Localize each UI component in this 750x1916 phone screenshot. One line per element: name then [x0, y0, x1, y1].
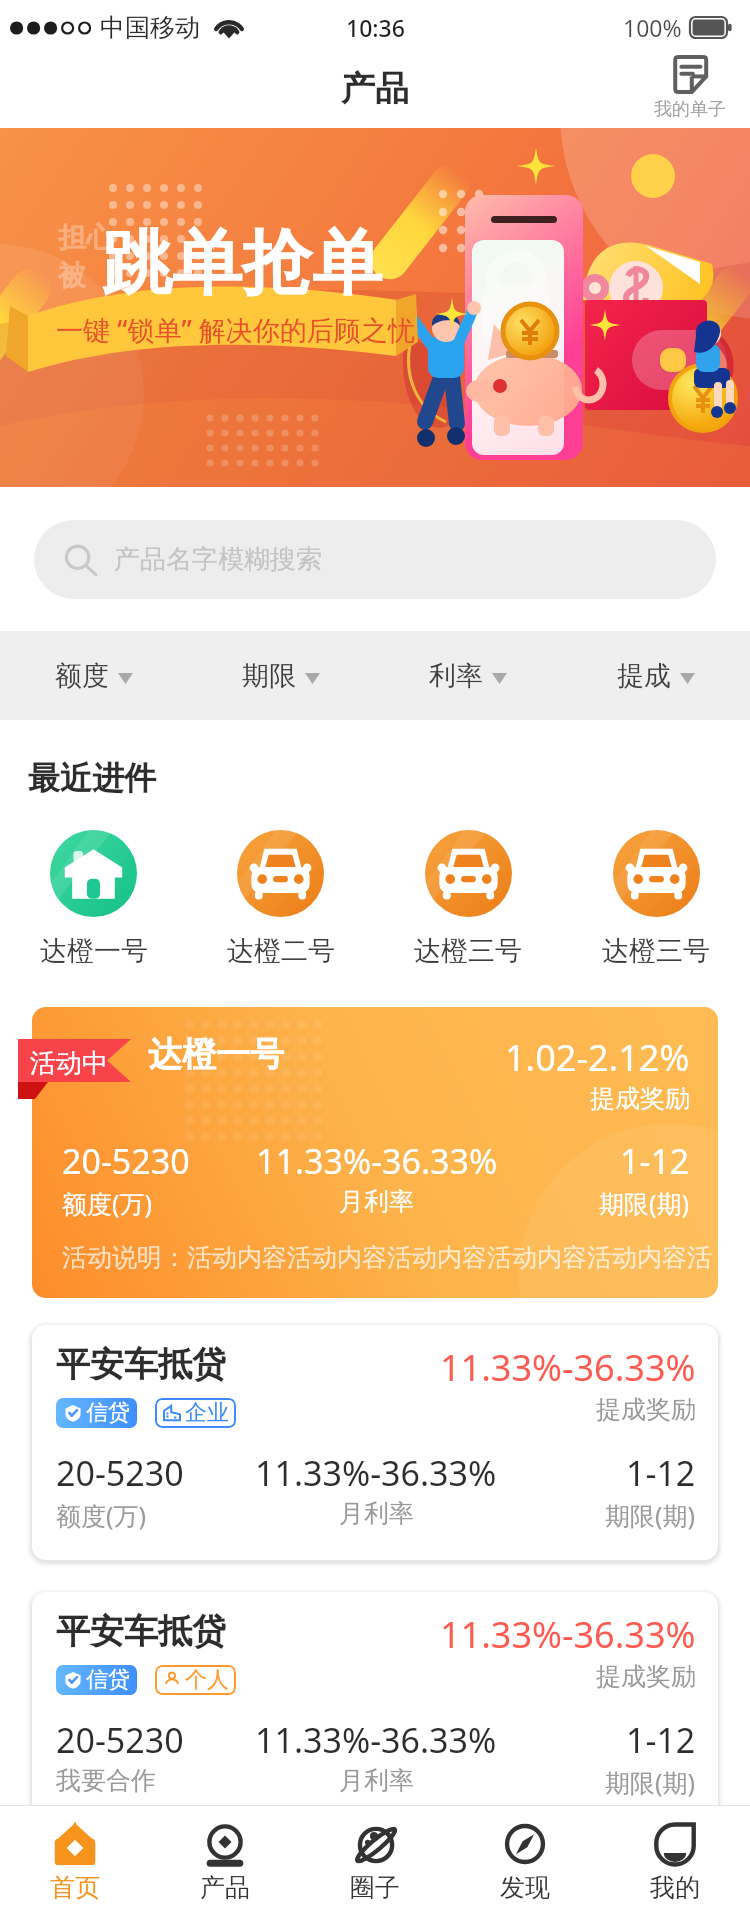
staticText: 我的 [650, 1872, 700, 1903]
staticText: 1-12 [626, 1450, 696, 1496]
staticText: 活动说明：活动内容活动内容活动内容活动内容活动内容活 [62, 1242, 712, 1273]
staticText: 期限(期) [605, 1765, 696, 1799]
staticText: 利率 [429, 659, 483, 693]
staticText: 期限(期) [599, 1186, 690, 1220]
staticText: 发现 [500, 1872, 550, 1903]
staticText: 1-12 [626, 1717, 696, 1763]
staticText: 1.02-2.12% [505, 1033, 690, 1082]
staticText: 11.33%-36.33% [255, 1450, 497, 1496]
staticText: 达橙二号 [227, 934, 335, 968]
button[interactable]: 平安车抵贷 [32, 1592, 718, 1827]
staticText: 月利率 [339, 1765, 414, 1796]
staticText: 信贷 [86, 1399, 130, 1427]
button[interactable]: 我的单子 [654, 55, 726, 121]
staticText: 期限(期) [605, 1498, 696, 1532]
button[interactable]: 额度 [0, 631, 187, 720]
button[interactable]: 我的 [600, 1806, 750, 1916]
staticText: 达橙三号 [602, 934, 710, 968]
staticText: 圈子 [350, 1872, 400, 1903]
staticText: 11.33%-36.33% [255, 1717, 497, 1763]
staticText: 20-5230 [56, 1450, 184, 1496]
staticText: 1-12 [620, 1138, 690, 1184]
staticText: 我要合作 [56, 1765, 156, 1796]
staticText: 达橙一号 [148, 1033, 284, 1076]
button[interactable]: 提成 [562, 631, 750, 720]
button[interactable]: 利率 [374, 631, 562, 720]
button[interactable]: 达橙二号 [187, 830, 374, 968]
staticText: 达橙三号 [414, 934, 522, 968]
staticText: 100% [623, 12, 682, 43]
staticText: 额度(万) [56, 1498, 147, 1532]
staticText: 产品 [341, 67, 409, 110]
staticText: 一键 “锁单” 解决你的后顾之忧 [56, 311, 415, 348]
staticText: 首页 [50, 1872, 100, 1903]
staticText: 10:36 [346, 12, 405, 43]
button[interactable]: 达橙三号 [374, 830, 562, 968]
staticText: 被 [58, 258, 86, 293]
staticText: 20-5230 [62, 1138, 190, 1184]
button[interactable]: 发现 [450, 1806, 600, 1916]
button[interactable]: 达橙一号 [32, 1007, 718, 1298]
staticText: 11.33%-36.33% [440, 1343, 696, 1392]
staticText: 额度(万) [62, 1186, 153, 1220]
staticText: 提成奖励 [596, 1394, 696, 1425]
staticText: 信贷 [86, 1666, 130, 1694]
staticText: 个人 [185, 1666, 229, 1694]
staticText: 月利率 [339, 1498, 414, 1529]
staticText: 担心 [58, 220, 114, 255]
staticText: 20-5230 [56, 1717, 184, 1763]
staticText: 提成奖励 [596, 1661, 696, 1692]
staticText: 11.33%-36.33% [256, 1138, 498, 1184]
button[interactable]: 平安车抵贷 [32, 1325, 718, 1560]
staticText: 产品名字模糊搜索 [114, 543, 322, 576]
staticText: 提成奖励 [590, 1083, 690, 1114]
staticText: 11.33%-36.33% [440, 1610, 696, 1659]
staticText: 提成 [617, 659, 671, 693]
staticText: 月利率 [339, 1186, 414, 1217]
staticText: 活动中 [30, 1047, 108, 1080]
button[interactable]: 达橙一号 [0, 830, 187, 968]
staticText: 达橙一号 [40, 934, 148, 968]
button[interactable]: 产品名字模糊搜索 [34, 520, 716, 599]
staticText: 我的单子 [654, 98, 726, 121]
button[interactable]: 达橙三号 [562, 830, 750, 968]
button[interactable]: 期限 [187, 631, 374, 720]
staticText: 最近进件 [28, 758, 156, 798]
staticText: 平安车抵贷 [56, 1343, 226, 1386]
staticText: 跳单抢单 [102, 220, 382, 308]
staticText: 产品 [200, 1872, 250, 1903]
staticText: 额度 [55, 659, 109, 693]
staticText: 平安车抵贷 [56, 1610, 226, 1653]
staticText: 企业 [185, 1399, 229, 1427]
button[interactable]: 圈子 [300, 1806, 450, 1916]
staticText: 中国移动 [100, 12, 200, 43]
button[interactable]: 首页 [0, 1806, 150, 1916]
button[interactable]: 产品 [150, 1806, 300, 1916]
staticText: 期限 [242, 659, 296, 693]
